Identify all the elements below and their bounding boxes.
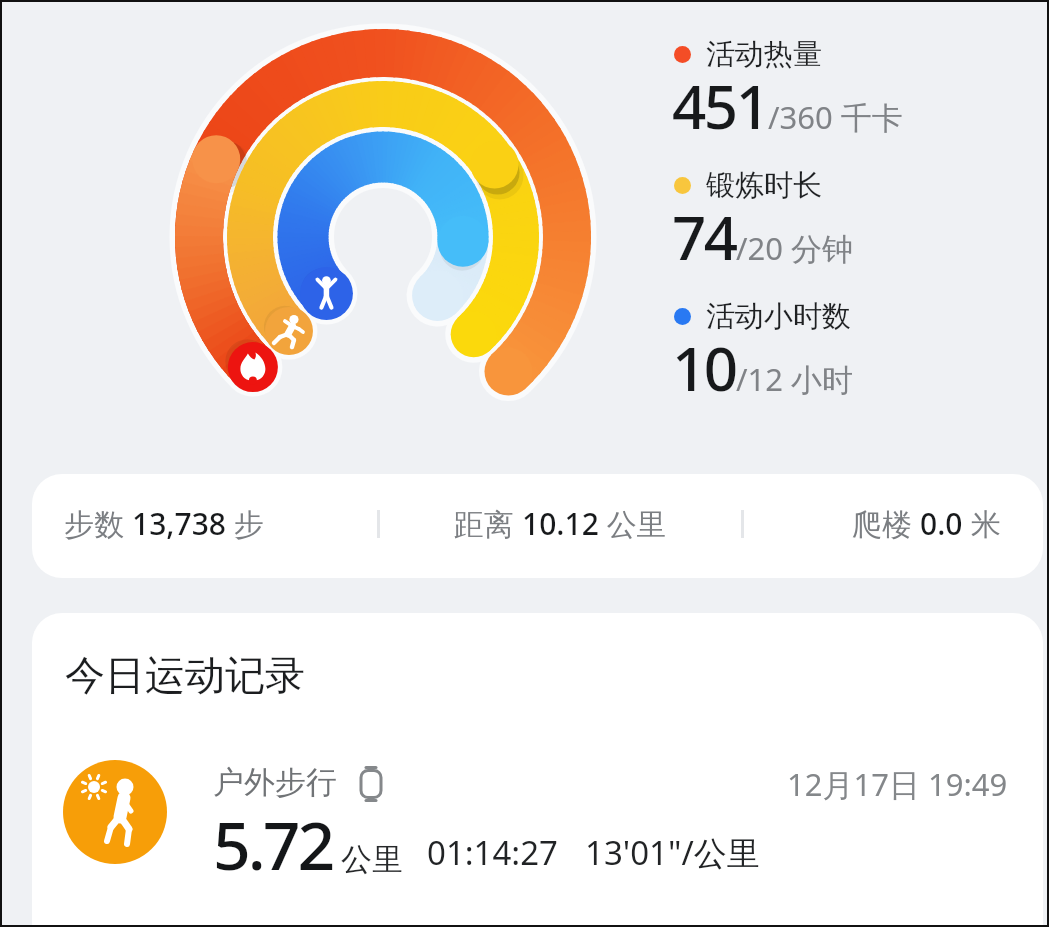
staticText: 距离 — [454, 503, 522, 544]
staticText: 公里 — [333, 837, 404, 879]
staticText: 12月17日 19:49 — [787, 763, 1008, 805]
staticText: 10.12 — [522, 503, 599, 544]
staticText: 米 — [963, 503, 1001, 544]
staticText: 451 — [672, 65, 768, 147]
staticText: 74 — [672, 196, 736, 278]
staticText: 0.0 — [920, 503, 963, 544]
staticText: 公里 — [599, 503, 667, 544]
staticText: 13'01"/公里 — [585, 830, 760, 875]
staticText: 步 — [226, 503, 264, 544]
staticText: 户外步行 — [213, 763, 337, 802]
staticText: 01:14:27 — [427, 830, 558, 875]
staticText: /20 分钟 — [736, 227, 854, 269]
button[interactable]: 步数 — [32, 474, 1043, 578]
staticText: 10 — [672, 327, 736, 409]
button[interactable] — [52, 753, 1027, 873]
staticText: 今日运动记录 — [65, 650, 305, 700]
staticText: 锻炼时长 — [706, 167, 822, 204]
staticText: 活动小时数 — [706, 298, 851, 335]
staticText: 步数 — [64, 503, 132, 544]
staticText: /360 千卡 — [768, 96, 903, 138]
staticText: 活动热量 — [706, 36, 822, 73]
staticText: 5.72 — [213, 799, 333, 889]
staticText: /12 小时 — [736, 358, 854, 400]
staticText: 13,738 — [132, 503, 226, 544]
staticText: 爬楼 — [852, 503, 920, 544]
